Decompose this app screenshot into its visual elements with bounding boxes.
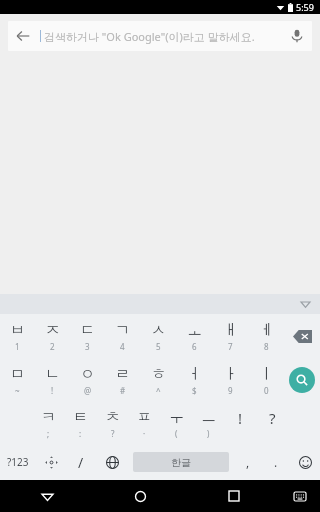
staticText: ㅈ [45, 321, 60, 340]
staticText: # [120, 385, 126, 396]
button[interactable]: ㅋ [32, 402, 64, 444]
staticText: ( [175, 428, 178, 439]
button[interactable]: ㅂ [0, 314, 35, 358]
button[interactable]: / [66, 444, 96, 480]
button[interactable]: Expand suggestions [297, 296, 313, 312]
button[interactable]: , [234, 444, 262, 480]
staticText: · [143, 428, 146, 439]
staticText: ㅍ [137, 408, 152, 427]
button[interactable]: Move cursor [36, 444, 66, 480]
staticText: ㅐ [223, 321, 238, 340]
staticText: 한글 [171, 456, 191, 469]
staticText: ㅏ [223, 365, 238, 384]
button[interactable]: ㅐ [212, 314, 248, 358]
staticText: 2 [50, 341, 55, 352]
staticText: ^ [156, 385, 161, 396]
button[interactable]: ㄷ [70, 314, 105, 358]
staticText: ㅗ [187, 321, 202, 340]
button[interactable]: ㅡ [192, 402, 224, 444]
staticText: ㅊ [105, 408, 120, 427]
button[interactable]: ? [256, 402, 288, 444]
button[interactable]: ㅜ [160, 402, 192, 444]
button[interactable]: ㅔ [248, 314, 284, 358]
button[interactable]: ㅅ [140, 314, 176, 358]
staticText: ! [238, 408, 243, 428]
button[interactable]: ㅌ [64, 402, 96, 444]
staticText: ㅜ [169, 408, 184, 427]
button[interactable]: Voice search [282, 21, 312, 51]
staticText: ㅡ [201, 408, 216, 427]
staticText: ㅂ [10, 321, 25, 340]
button[interactable]: 한글 [133, 452, 229, 472]
staticText: 9 [228, 385, 233, 396]
button[interactable]: ㅈ [35, 314, 70, 358]
button[interactable]: Switch keyboard [280, 480, 320, 512]
staticText: ㅋ [41, 408, 56, 427]
button[interactable]: ㅎ [140, 358, 176, 402]
staticText: ㅣ [259, 365, 274, 384]
button[interactable]: Backspace [284, 314, 320, 358]
button[interactable]: ㄴ [35, 358, 70, 402]
staticText: / [78, 453, 84, 472]
staticText: , [246, 454, 250, 470]
staticText: ㄹ [115, 365, 130, 384]
staticText: ㅌ [73, 408, 88, 427]
button[interactable]: ㅁ [0, 358, 35, 402]
staticText: ? [111, 428, 115, 439]
staticText: $ [192, 385, 197, 396]
staticText: 5 [156, 341, 161, 352]
staticText: 7 [228, 341, 233, 352]
staticText: ㅎ [151, 365, 166, 384]
staticText: ; [47, 428, 50, 439]
button[interactable]: ㅏ [212, 358, 248, 402]
staticText: ㅓ [187, 365, 202, 384]
button[interactable]: ㄱ [105, 314, 140, 358]
button[interactable]: Back [8, 21, 312, 51]
staticText: . [274, 454, 278, 470]
staticText: 6 [192, 341, 197, 352]
button[interactable]: ㅍ [128, 402, 160, 444]
button[interactable]: . [262, 444, 290, 480]
button[interactable]: Hide keyboard [0, 480, 94, 512]
button[interactable]: Recents [187, 480, 280, 512]
staticText: ㅔ [259, 321, 274, 340]
button[interactable]: Emoji [290, 444, 320, 480]
button[interactable]: ! [224, 402, 256, 444]
staticText: 검색하거나 "Ok Google"(이)라고 말하세요. [44, 29, 282, 44]
staticText: ) [207, 428, 210, 439]
button[interactable]: ㅓ [176, 358, 212, 402]
staticText: 8 [264, 341, 269, 352]
staticText: ! [51, 385, 54, 396]
staticText: ~ [15, 385, 20, 396]
staticText: ㅁ [10, 365, 25, 384]
button[interactable]: ㅊ [96, 402, 128, 444]
button[interactable]: Change language [96, 444, 128, 480]
staticText: ㅇ [80, 365, 95, 384]
staticText: 0 [264, 385, 269, 396]
button[interactable]: Home [94, 480, 187, 512]
staticText: ? [269, 408, 276, 428]
button[interactable]: Back [8, 21, 38, 51]
staticText: ㄱ [115, 321, 130, 340]
staticText: : [79, 428, 82, 439]
staticText: 3 [85, 341, 90, 352]
staticText: 4 [120, 341, 125, 352]
button[interactable]: ㅣ [248, 358, 284, 402]
staticText: 1 [15, 341, 20, 352]
staticText: ㄴ [45, 365, 60, 384]
button[interactable]: ㅗ [176, 314, 212, 358]
staticText: 5:59 [296, 1, 314, 13]
button[interactable]: Search [284, 358, 320, 402]
button[interactable]: ㄹ [105, 358, 140, 402]
staticText: ㅅ [151, 321, 166, 340]
staticText: @ [84, 385, 92, 396]
button[interactable]: ?123 [0, 444, 36, 480]
staticText: ㄷ [80, 321, 95, 340]
staticText: ?123 [7, 455, 29, 469]
button[interactable]: ㅇ [70, 358, 105, 402]
